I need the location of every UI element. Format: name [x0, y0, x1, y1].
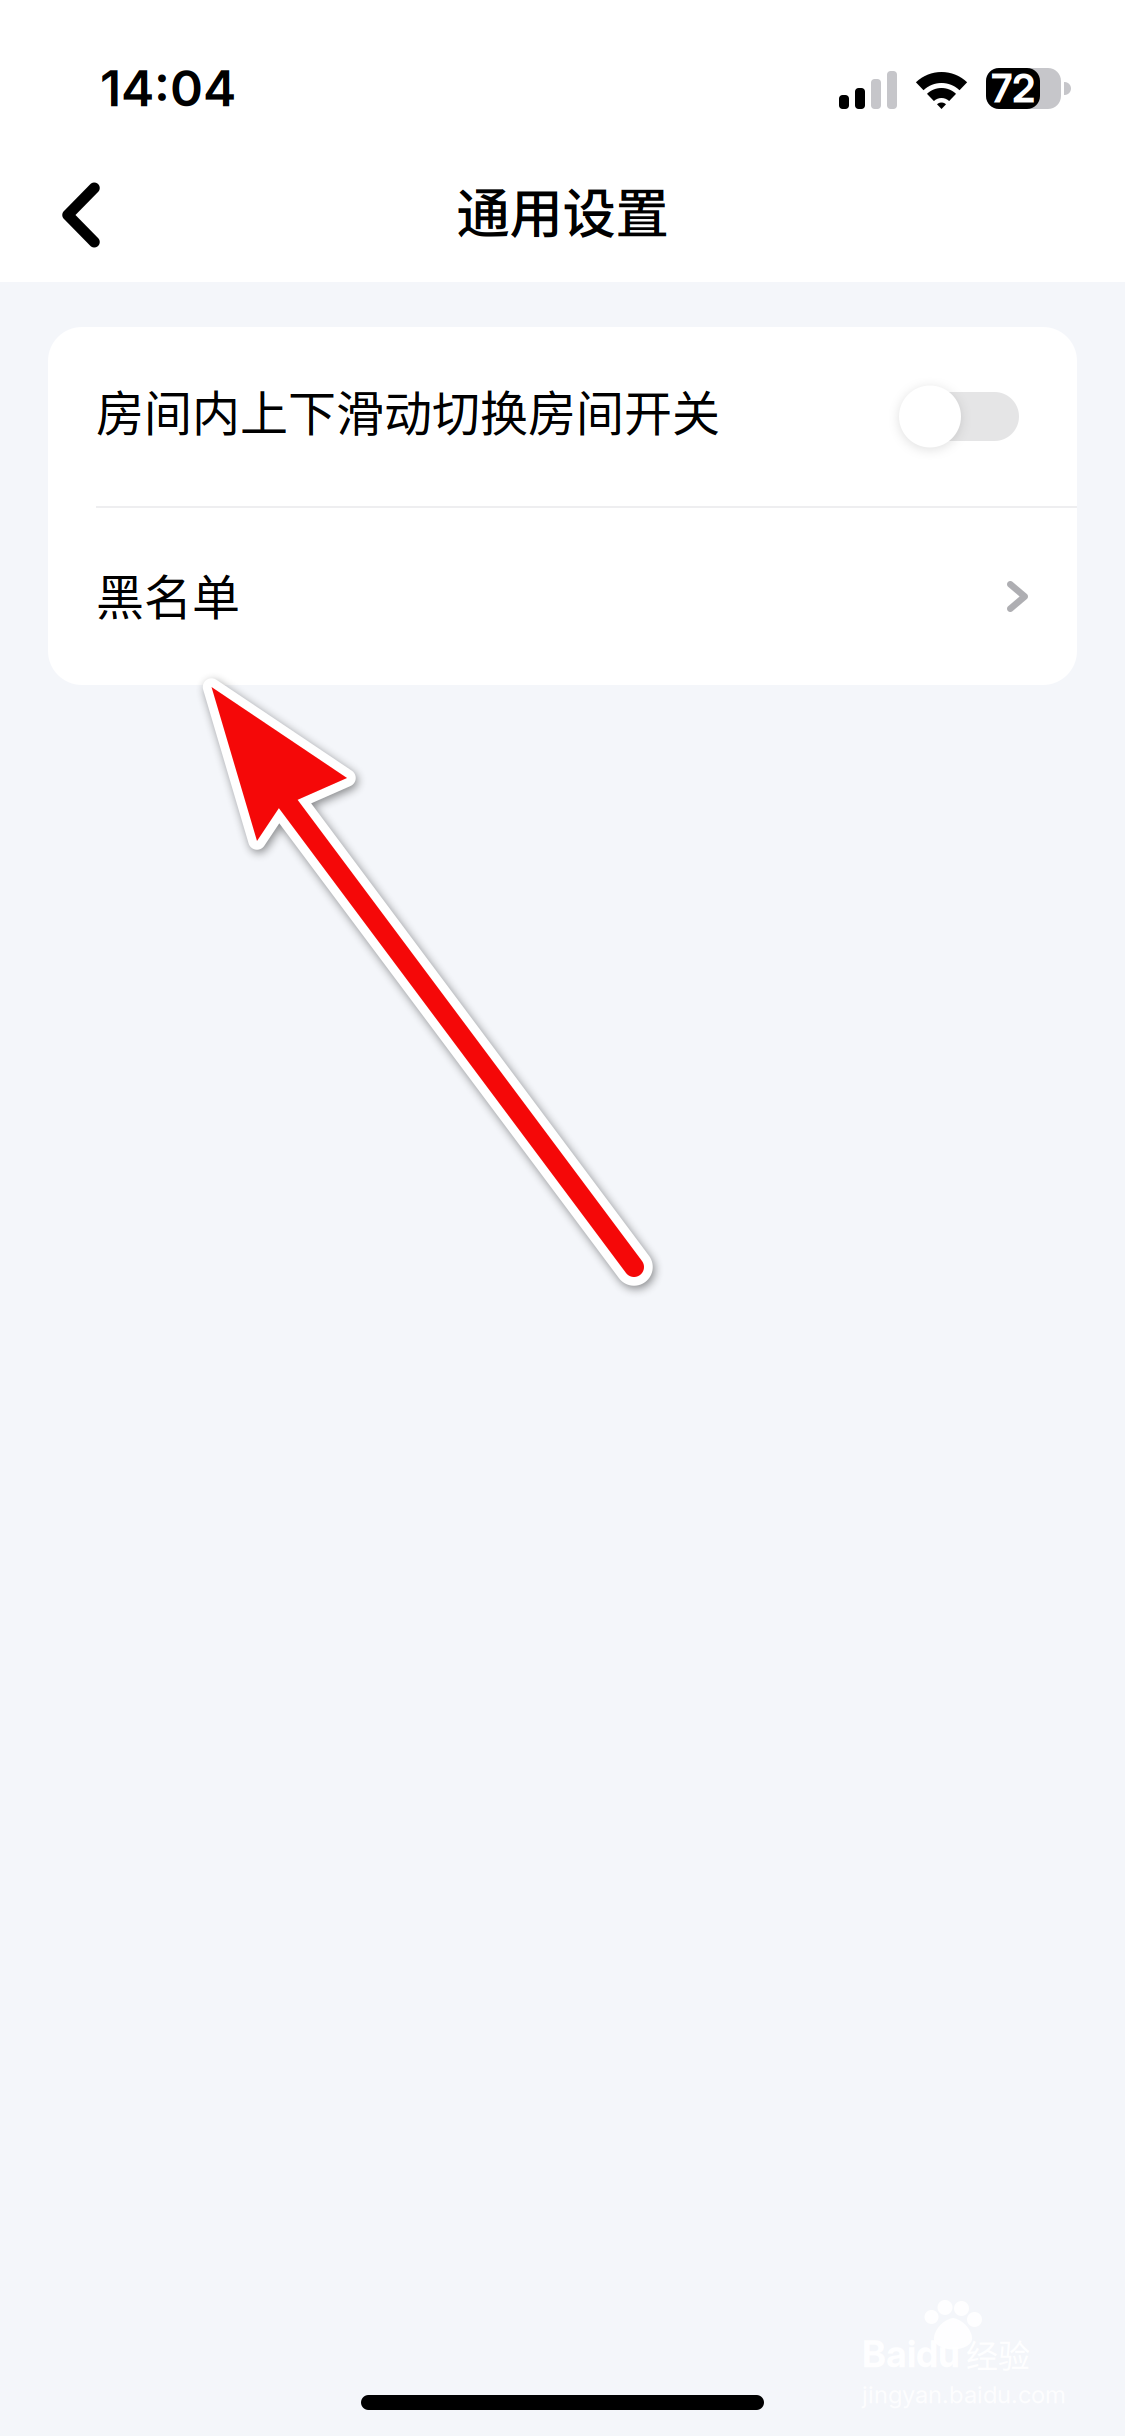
button[interactable]: 返回	[16, 132, 146, 282]
staticText: 房间内上下滑动切换房间开关	[96, 375, 720, 445]
staticText: Baidu	[862, 2332, 960, 2376]
staticText: 14:04	[100, 58, 236, 118]
button[interactable]: 房间内上下滑动切换房间，关	[899, 385, 1019, 447]
button[interactable]: 黑名单	[48, 508, 1077, 685]
staticText: 通用设置	[456, 171, 668, 249]
staticText: 经验	[966, 2331, 1030, 2377]
button[interactable]: 房间内上下滑动切换房间开关	[48, 327, 1077, 506]
staticText: 72	[991, 65, 1035, 112]
staticText: 黑名单	[96, 559, 240, 629]
